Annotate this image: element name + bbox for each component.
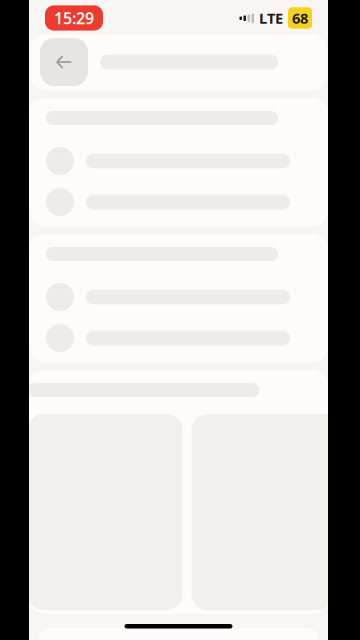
staticText: 68 (292, 8, 308, 28)
staticText: 15:29 (54, 7, 94, 29)
staticText: LTE (259, 8, 283, 28)
button[interactable]: Back (40, 38, 88, 86)
